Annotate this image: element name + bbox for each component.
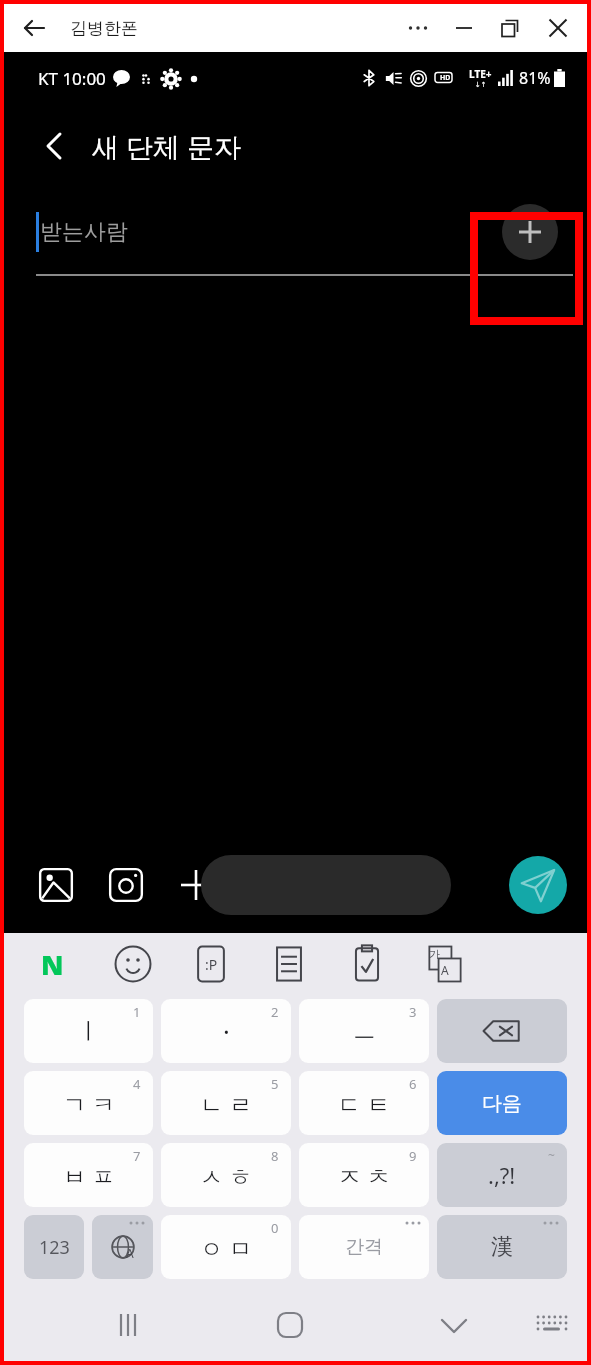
staticText: ㄱ ㅋ <box>63 1088 115 1119</box>
staticText: 다음 <box>482 1091 522 1116</box>
staticText: ㅅ ㅎ <box>200 1160 252 1191</box>
staticText: A <box>126 1245 134 1261</box>
button[interactable]: Close <box>533 4 583 52</box>
button[interactable]: ㅣ <box>24 999 153 1063</box>
button[interactable]: Add recipient <box>502 204 558 260</box>
staticText: ㅇ ㅁ <box>200 1232 252 1263</box>
staticText: · <box>223 1016 230 1047</box>
staticText: .,?! <box>488 1160 516 1190</box>
button[interactable]: Send <box>509 856 567 914</box>
button[interactable]: ㅂ ㅍ <box>24 1143 153 1207</box>
staticText: 漢 <box>491 1233 513 1261</box>
staticText: LTE+ <box>469 67 492 81</box>
button[interactable]: .,?! <box>437 1143 567 1207</box>
button[interactable]: 123 <box>24 1215 84 1279</box>
staticText: ㄴ ㄹ <box>200 1088 252 1119</box>
button[interactable]: Switch keyboard <box>524 1297 580 1353</box>
staticText: 123 <box>39 1235 70 1260</box>
button[interactable]: 간격 <box>299 1215 429 1279</box>
button[interactable]: 다음 <box>437 1071 567 1135</box>
staticText: N <box>41 946 64 983</box>
staticText: 1 <box>133 1003 141 1021</box>
staticText: 새 단체 문자 <box>92 128 242 165</box>
button[interactable]: Gallery <box>32 861 80 909</box>
staticText: 3 <box>409 1003 417 1021</box>
button[interactable]: Home <box>262 1297 318 1353</box>
button[interactable]: ㅇ ㅁ <box>161 1215 291 1279</box>
button[interactable]: Emoji <box>110 941 156 987</box>
staticText: ~ <box>548 1147 555 1163</box>
button[interactable]: · <box>161 999 291 1063</box>
button[interactable]: Minimize <box>441 5 487 51</box>
staticText: ㅣ <box>77 1017 100 1046</box>
button[interactable]: More attachments <box>172 861 220 909</box>
staticText: ㅈ ㅊ <box>338 1160 390 1191</box>
button[interactable]: ㄷ ㅌ <box>299 1071 429 1135</box>
button[interactable]: Recent apps <box>100 1297 156 1353</box>
staticText: 김병한폰 <box>70 18 138 39</box>
staticText: 2 <box>271 1003 279 1021</box>
staticText: 7 <box>133 1147 141 1165</box>
button[interactable]: Change language <box>92 1215 153 1279</box>
button[interactable]: More options <box>395 5 441 51</box>
staticText: :P <box>205 955 218 974</box>
button[interactable]: ㅅ ㅎ <box>161 1143 291 1207</box>
button[interactable]: Backspace <box>437 999 567 1063</box>
button[interactable] <box>201 855 451 915</box>
staticText: 0 <box>271 1219 279 1237</box>
staticText: 4 <box>133 1075 141 1093</box>
button[interactable]: Emoticon <box>188 941 234 987</box>
staticText: ㅂ ㅍ <box>63 1160 115 1191</box>
button[interactable]: Hide keyboard <box>426 1297 482 1353</box>
button[interactable]: Restore window <box>487 5 533 51</box>
staticText: 6 <box>409 1075 417 1093</box>
staticText: 9 <box>409 1147 417 1165</box>
staticText: 81% <box>519 67 551 89</box>
staticText: KT 10:00 <box>38 67 106 90</box>
button[interactable]: Text templates <box>266 941 312 987</box>
staticText: ↓↑ <box>475 81 487 89</box>
button[interactable]: ㅡ <box>299 999 429 1063</box>
button[interactable]: Navigate up <box>30 122 78 170</box>
button[interactable]: ㄱ ㅋ <box>24 1071 153 1135</box>
staticText: ㅡ <box>353 1017 376 1046</box>
button[interactable]: Camera <box>102 861 150 909</box>
staticText: 5 <box>271 1075 279 1093</box>
staticText: 8 <box>271 1147 279 1165</box>
staticText: 가 <box>429 947 440 961</box>
button[interactable]: ㄴ ㄹ <box>161 1071 291 1135</box>
button[interactable]: Naver <box>26 938 78 990</box>
button[interactable]: Clipboard <box>344 941 390 987</box>
button[interactable]: 漢 <box>437 1215 567 1279</box>
button[interactable]: Back <box>14 7 56 49</box>
staticText: ㄷ ㅌ <box>338 1088 390 1119</box>
staticText: A <box>441 962 449 978</box>
button[interactable]: ㅈ ㅊ <box>299 1143 429 1207</box>
button[interactable]: Translate <box>422 941 468 987</box>
staticText: 받는사람 <box>40 218 128 246</box>
staticText: HD <box>440 73 451 83</box>
staticText: 간격 <box>345 1235 383 1259</box>
